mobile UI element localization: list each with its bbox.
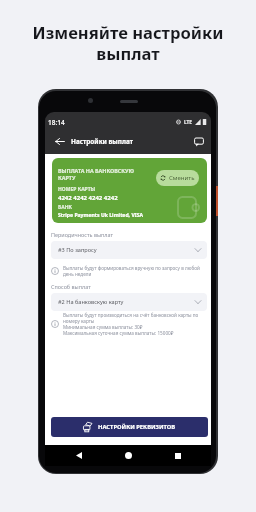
staticText: 18:14 [48,118,65,127]
staticText: Способ выплат [51,283,91,290]
staticText: LTE [184,119,193,126]
staticText: Настройки выплат [71,137,133,146]
button[interactable]: #3 По запросу [51,241,207,259]
button[interactable]: Chat [192,135,205,148]
staticText: 4242 4242 4242 4242 [58,194,118,202]
button[interactable]: Back [53,135,66,148]
staticText: ВЫПЛАТА НА БАНКОВСКУЮ КАРТУ [58,167,135,181]
button[interactable]: Back [67,445,91,466]
staticText: НОМЕР КАРТЫ [58,186,96,193]
staticText: Выплаты будут производиться на счёт банк… [63,312,199,336]
staticText: БАНК [58,204,73,211]
button[interactable]: ВЫПЛАТА НА БАНКОВСКУЮ КАРТУ [52,158,207,223]
button[interactable]: #2 На банковскую карту [51,293,207,311]
button[interactable]: Home [114,445,142,466]
staticText: #2 На банковскую карту [58,298,124,306]
button[interactable]: Сменить [156,170,199,186]
staticText: Выплаты будут формироваться вручную по з… [63,265,200,277]
staticText: Stripe Payments Uk Limited, VISA [58,212,144,219]
staticText: Изменяйте настройки выплат [4,21,252,65]
staticText: Сменить [169,174,195,182]
button[interactable]: Recents [166,445,190,466]
staticText: НАСТРОЙКИ РЕКВИЗИТОВ [98,423,176,431]
staticText: #3 По запросу [58,246,97,254]
button[interactable]: НАСТРОЙКИ РЕКВИЗИТОВ [51,417,208,437]
staticText: Периодичность выплат [51,231,114,238]
